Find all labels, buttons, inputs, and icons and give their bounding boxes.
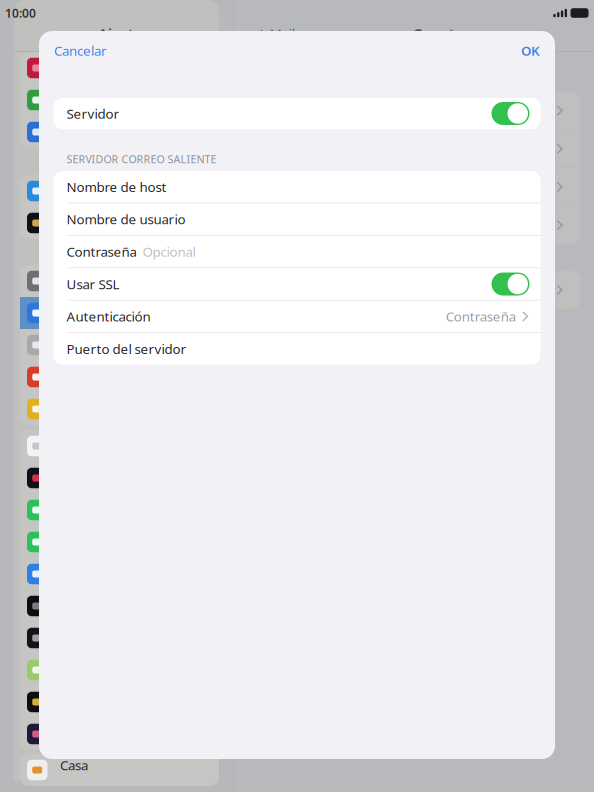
staticText: Casa <box>60 756 88 774</box>
staticText: Cuenta <box>413 24 464 43</box>
staticText: Cancelar <box>54 42 107 59</box>
button[interactable]: Autenticación <box>53 301 540 332</box>
staticText: SERVIDOR CORREO SALIENTE <box>66 152 216 166</box>
staticText: Puerto del servidor <box>66 340 186 358</box>
button[interactable]: Puerto del servidor <box>53 333 540 365</box>
staticText: OK <box>521 42 540 59</box>
button[interactable]: Servidor <box>53 98 540 129</box>
button[interactable]: Contraseña <box>53 236 540 267</box>
button[interactable]: Usar SSL <box>53 268 540 300</box>
staticText: Mail <box>270 25 295 42</box>
staticText: Contraseña <box>446 307 516 325</box>
staticText: Usar SSL <box>66 275 119 293</box>
button[interactable]: Nombre de host <box>53 171 540 203</box>
staticText: Opcional <box>136 243 195 260</box>
button[interactable]: Cancelar <box>39 35 117 66</box>
staticText: Autenticación <box>66 307 150 325</box>
staticText: Servidor <box>66 105 119 122</box>
staticText: Contraseña <box>66 243 136 260</box>
staticText: Nombre de usuario <box>66 210 185 228</box>
button[interactable]: OK <box>511 35 555 66</box>
staticText: 10:00 <box>5 5 36 21</box>
button[interactable]: Nombre de usuario <box>53 203 540 235</box>
staticText: Nombre de host <box>66 178 166 196</box>
staticText: Ajustes <box>98 24 150 43</box>
